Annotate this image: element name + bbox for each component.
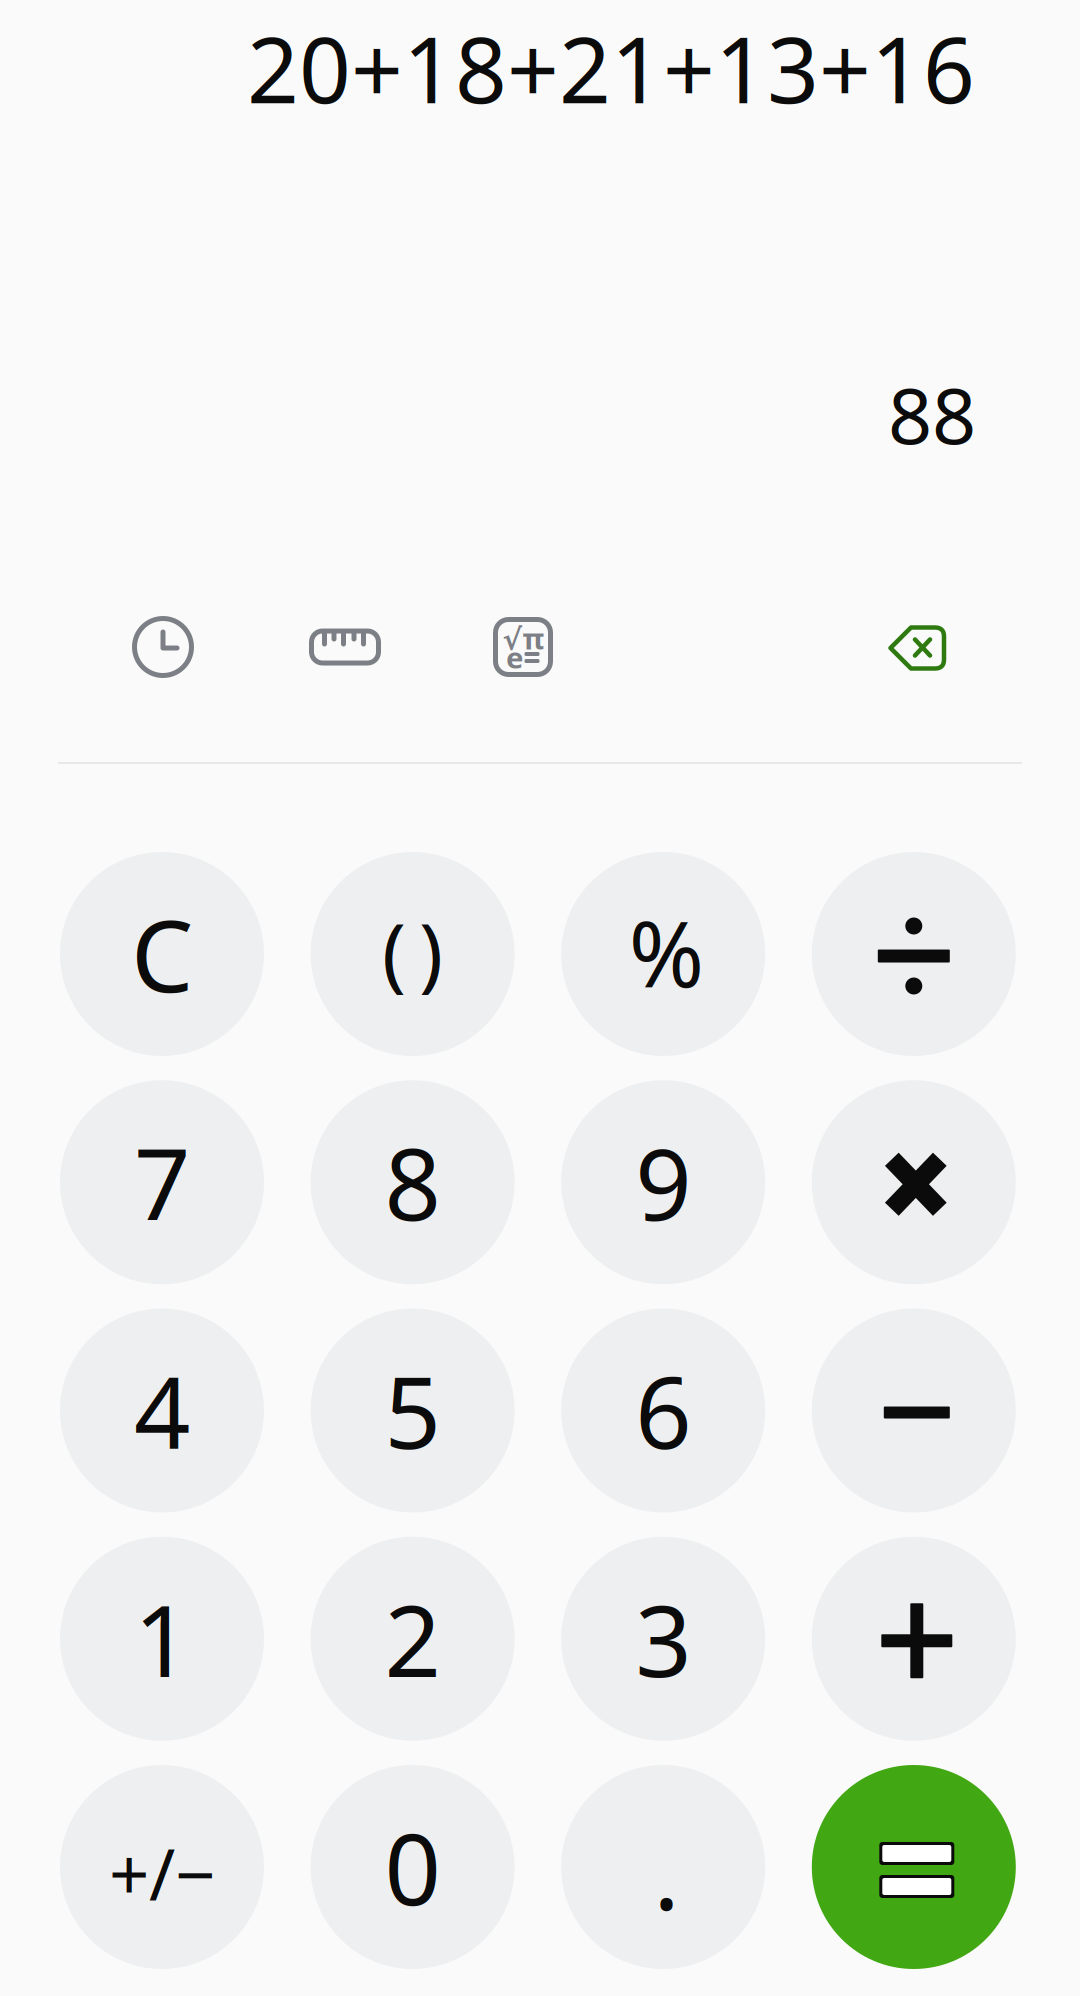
button[interactable]: % bbox=[561, 852, 765, 1056]
staticText: 5 bbox=[385, 1345, 441, 1476]
button[interactable]: Plus bbox=[812, 1537, 1016, 1741]
button[interactable]: 6 bbox=[561, 1308, 765, 1512]
staticText: 8 bbox=[385, 1117, 441, 1248]
button[interactable]: 5 bbox=[311, 1308, 515, 1512]
button[interactable]: Equals bbox=[812, 1765, 1016, 1969]
staticText: e bbox=[506, 637, 524, 676]
button[interactable]: Backspace bbox=[867, 598, 967, 698]
button[interactable]: 9 bbox=[561, 1080, 765, 1284]
button[interactable]: History bbox=[113, 597, 213, 697]
staticText: 9 bbox=[635, 1117, 691, 1248]
button[interactable]: Unit converter bbox=[295, 597, 395, 697]
staticText: % bbox=[629, 892, 704, 1012]
button[interactable]: ( ) bbox=[311, 852, 515, 1056]
button[interactable]: 8 bbox=[311, 1080, 515, 1284]
staticText: 6 bbox=[635, 1345, 691, 1476]
button[interactable]: +/− bbox=[60, 1765, 264, 1969]
button[interactable]: Minus bbox=[812, 1308, 1016, 1512]
button[interactable]: 0 bbox=[311, 1765, 515, 1969]
button[interactable]: 2 bbox=[311, 1537, 515, 1741]
staticText: ( ) bbox=[382, 898, 443, 1004]
staticText: 1 bbox=[134, 1573, 190, 1704]
staticText: 3 bbox=[635, 1573, 691, 1704]
staticText: 7 bbox=[134, 1117, 190, 1248]
staticText: 4 bbox=[134, 1345, 190, 1476]
button[interactable]: 4 bbox=[60, 1308, 264, 1512]
button[interactable]: C bbox=[60, 852, 264, 1056]
button[interactable]: 3 bbox=[561, 1537, 765, 1741]
button[interactable]: 7 bbox=[60, 1080, 264, 1284]
staticText: 2 bbox=[385, 1573, 441, 1704]
staticText: C bbox=[131, 888, 193, 1019]
staticText: 20+18+21+13+16 bbox=[247, 8, 975, 128]
staticText: . bbox=[653, 1806, 679, 1937]
button[interactable]: Multiply bbox=[812, 1080, 1016, 1284]
staticText: +/− bbox=[109, 1826, 215, 1920]
button[interactable]: Divide bbox=[812, 852, 1016, 1056]
button[interactable]: . bbox=[561, 1765, 765, 1969]
button[interactable]: 1 bbox=[60, 1537, 264, 1741]
staticText: 88 bbox=[888, 363, 976, 465]
staticText: √π bbox=[502, 618, 544, 657]
staticText: 0 bbox=[385, 1801, 441, 1932]
button[interactable]: Scientific calculator bbox=[473, 597, 573, 697]
